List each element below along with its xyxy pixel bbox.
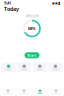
button[interactable]: Stat <box>48 62 62 72</box>
button[interactable]: Tab <box>16 89 32 94</box>
button[interactable]: Tab <box>0 89 16 94</box>
button[interactable]: Stat <box>1 62 16 72</box>
staticText: 68% <box>28 26 36 31</box>
button[interactable]: Tab <box>48 89 64 94</box>
staticText: Start <box>27 53 37 58</box>
staticText: Today <box>4 5 19 13</box>
staticText: Daily goal <box>25 14 38 17</box>
button[interactable]: Tab <box>32 89 48 94</box>
staticText: 9:41 <box>4 0 11 6</box>
button[interactable]: Start <box>24 52 39 58</box>
button[interactable]: Stat <box>17 62 31 72</box>
button[interactable]: Stat <box>33 62 47 72</box>
staticText: ▪▪▮ <box>52 1 60 5</box>
